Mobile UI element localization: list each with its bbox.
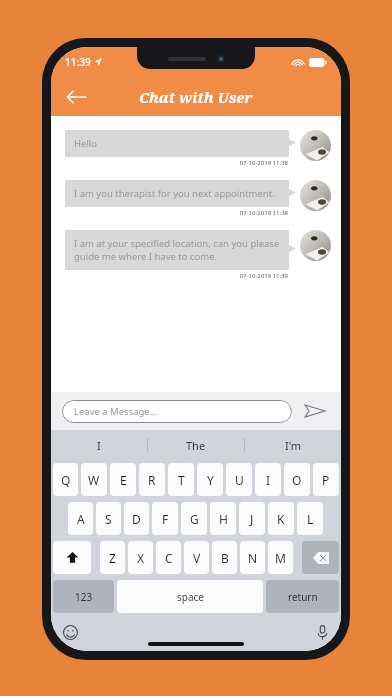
button[interactable]: Hello <box>65 130 289 157</box>
staticText: return <box>288 590 318 604</box>
staticText: I <box>266 472 271 488</box>
staticText: V <box>193 550 201 566</box>
button[interactable]: O <box>284 463 310 496</box>
staticText: I am at your specified location, can you… <box>74 237 280 263</box>
staticText: I <box>97 438 101 453</box>
staticText: Hello <box>74 137 98 150</box>
staticText: E <box>120 472 127 488</box>
staticText: U <box>235 472 244 488</box>
staticText: 123 <box>75 590 93 604</box>
staticText: L <box>307 511 314 527</box>
staticText: W <box>88 472 100 488</box>
staticText: D <box>132 511 141 527</box>
staticText: C <box>165 550 173 566</box>
button[interactable]: H <box>210 502 236 535</box>
button[interactable]: T <box>168 463 194 496</box>
button[interactable]: 123 <box>53 580 114 613</box>
button[interactable]: N <box>240 541 265 574</box>
button[interactable]: The <box>148 430 244 460</box>
staticText: space <box>177 590 204 604</box>
staticText: O <box>292 472 302 488</box>
staticText: K <box>277 511 285 527</box>
button[interactable]: F <box>152 502 178 535</box>
staticText: Leave a Message... <box>74 405 158 418</box>
staticText: X <box>137 550 145 566</box>
staticText: S <box>105 511 112 527</box>
staticText: B <box>221 550 229 566</box>
staticText: 07-10-2019 11:39 <box>65 272 288 280</box>
button[interactable]: D <box>124 502 149 535</box>
button[interactable]: Back <box>59 80 93 114</box>
button[interactable]: I am you therapist for you next appointm… <box>65 180 289 207</box>
button[interactable]: G <box>181 502 207 535</box>
staticText: Chat with User <box>139 87 253 107</box>
staticText: F <box>162 511 169 527</box>
button[interactable]: P <box>313 463 339 496</box>
staticText: The <box>186 438 206 453</box>
button[interactable]: Voice input <box>310 620 334 644</box>
button[interactable]: S <box>96 502 121 535</box>
staticText: G <box>190 511 199 527</box>
button[interactable]: I'm <box>245 430 341 460</box>
button[interactable]: E <box>110 463 136 496</box>
button[interactable]: I am at your specified location, can you… <box>65 230 289 270</box>
button[interactable]: Shift <box>53 541 91 574</box>
button[interactable]: M <box>268 541 293 574</box>
staticText: I am you therapist for you next appointm… <box>74 187 275 200</box>
button[interactable]: J <box>239 502 265 535</box>
staticText: Z <box>109 550 116 566</box>
button[interactable]: A <box>68 502 93 535</box>
button[interactable]: L <box>297 502 323 535</box>
staticText: 07-10-2019 11:38 <box>65 159 288 167</box>
button[interactable]: I <box>51 430 147 460</box>
button[interactable]: Send <box>302 398 328 424</box>
button[interactable]: Emoji <box>58 620 82 644</box>
staticText: J <box>250 511 254 527</box>
button[interactable]: return <box>266 580 339 613</box>
button[interactable]: Backspace <box>302 541 339 574</box>
button[interactable]: Leave a Message... <box>62 400 292 423</box>
staticText: N <box>248 550 258 566</box>
button[interactable]: Z <box>100 541 125 574</box>
button[interactable]: V <box>184 541 209 574</box>
staticText: 11:39 <box>65 55 91 69</box>
staticText: P <box>322 472 330 488</box>
staticText: Y <box>207 472 214 488</box>
button[interactable]: space <box>117 580 263 613</box>
staticText: H <box>219 511 228 527</box>
button[interactable]: Q <box>53 463 78 496</box>
button[interactable]: B <box>212 541 237 574</box>
button[interactable]: Y <box>197 463 223 496</box>
staticText: R <box>148 472 156 488</box>
button[interactable]: X <box>128 541 153 574</box>
button[interactable] <box>300 180 331 211</box>
button[interactable]: C <box>156 541 181 574</box>
staticText: 07-10-2019 11:38 <box>65 209 288 217</box>
button[interactable]: R <box>139 463 165 496</box>
button[interactable]: W <box>81 463 107 496</box>
button[interactable]: I <box>255 463 281 496</box>
button[interactable] <box>300 230 331 261</box>
staticText: I'm <box>285 438 302 453</box>
staticText: T <box>178 472 185 488</box>
staticText: Q <box>61 472 71 488</box>
button[interactable] <box>300 130 331 161</box>
staticText: A <box>77 511 85 527</box>
staticText: M <box>275 550 286 566</box>
button[interactable]: U <box>226 463 252 496</box>
button[interactable]: K <box>268 502 294 535</box>
